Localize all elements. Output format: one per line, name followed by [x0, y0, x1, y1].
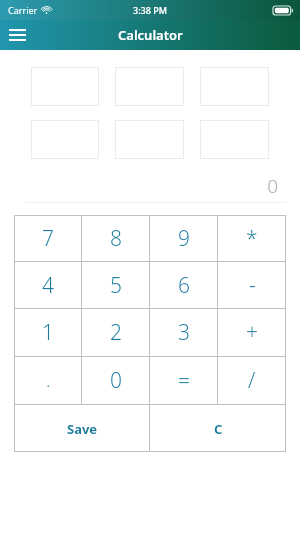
- button[interactable]: Memory slot 2: [115, 67, 184, 106]
- staticText: 6: [178, 271, 190, 300]
- button[interactable]: 3: [150, 309, 218, 356]
- staticText: /: [248, 366, 256, 395]
- staticText: -: [249, 271, 256, 300]
- staticText: +: [246, 318, 258, 347]
- staticText: 8: [110, 224, 122, 253]
- button[interactable]: Menu: [0, 20, 34, 50]
- button[interactable]: *: [218, 215, 286, 261]
- staticText: C: [214, 420, 223, 438]
- staticText: *: [246, 224, 258, 253]
- staticText: 5: [110, 271, 122, 300]
- button[interactable]: Memory slot 6: [200, 120, 269, 159]
- button[interactable]: =: [150, 357, 218, 404]
- staticText: 2: [110, 318, 122, 347]
- button[interactable]: /: [218, 357, 286, 404]
- button[interactable]: C: [150, 405, 286, 452]
- staticText: 4: [42, 271, 54, 300]
- staticText: 7: [42, 224, 54, 253]
- staticText: 3: [178, 318, 190, 347]
- button[interactable]: 5: [82, 262, 150, 308]
- button[interactable]: Memory slot 3: [200, 67, 269, 106]
- button[interactable]: 0: [82, 357, 150, 404]
- button[interactable]: 1: [14, 309, 82, 356]
- button[interactable]: 9: [150, 215, 218, 261]
- button[interactable]: 2: [82, 309, 150, 356]
- button[interactable]: Save: [14, 405, 150, 452]
- button[interactable]: 8: [82, 215, 150, 261]
- button[interactable]: Memory slot 1: [31, 67, 99, 106]
- button[interactable]: 7: [14, 215, 82, 261]
- button[interactable]: Memory slot 5: [115, 120, 184, 159]
- staticText: .: [46, 368, 51, 393]
- staticText: 3:38 PM: [133, 4, 167, 16]
- button[interactable]: Memory slot 4: [31, 120, 99, 159]
- button[interactable]: .: [14, 357, 82, 404]
- staticText: Calculator: [118, 26, 183, 44]
- button[interactable]: -: [218, 262, 286, 308]
- staticText: =: [178, 366, 190, 395]
- staticText: 1: [42, 318, 54, 347]
- staticText: 9: [178, 224, 190, 253]
- button[interactable]: 6: [150, 262, 218, 308]
- staticText: Carrier: [8, 4, 38, 16]
- staticText: 0: [267, 173, 278, 199]
- staticText: 0: [110, 366, 122, 395]
- button[interactable]: +: [218, 309, 286, 356]
- button[interactable]: 4: [14, 262, 82, 308]
- staticText: Save: [67, 420, 98, 438]
